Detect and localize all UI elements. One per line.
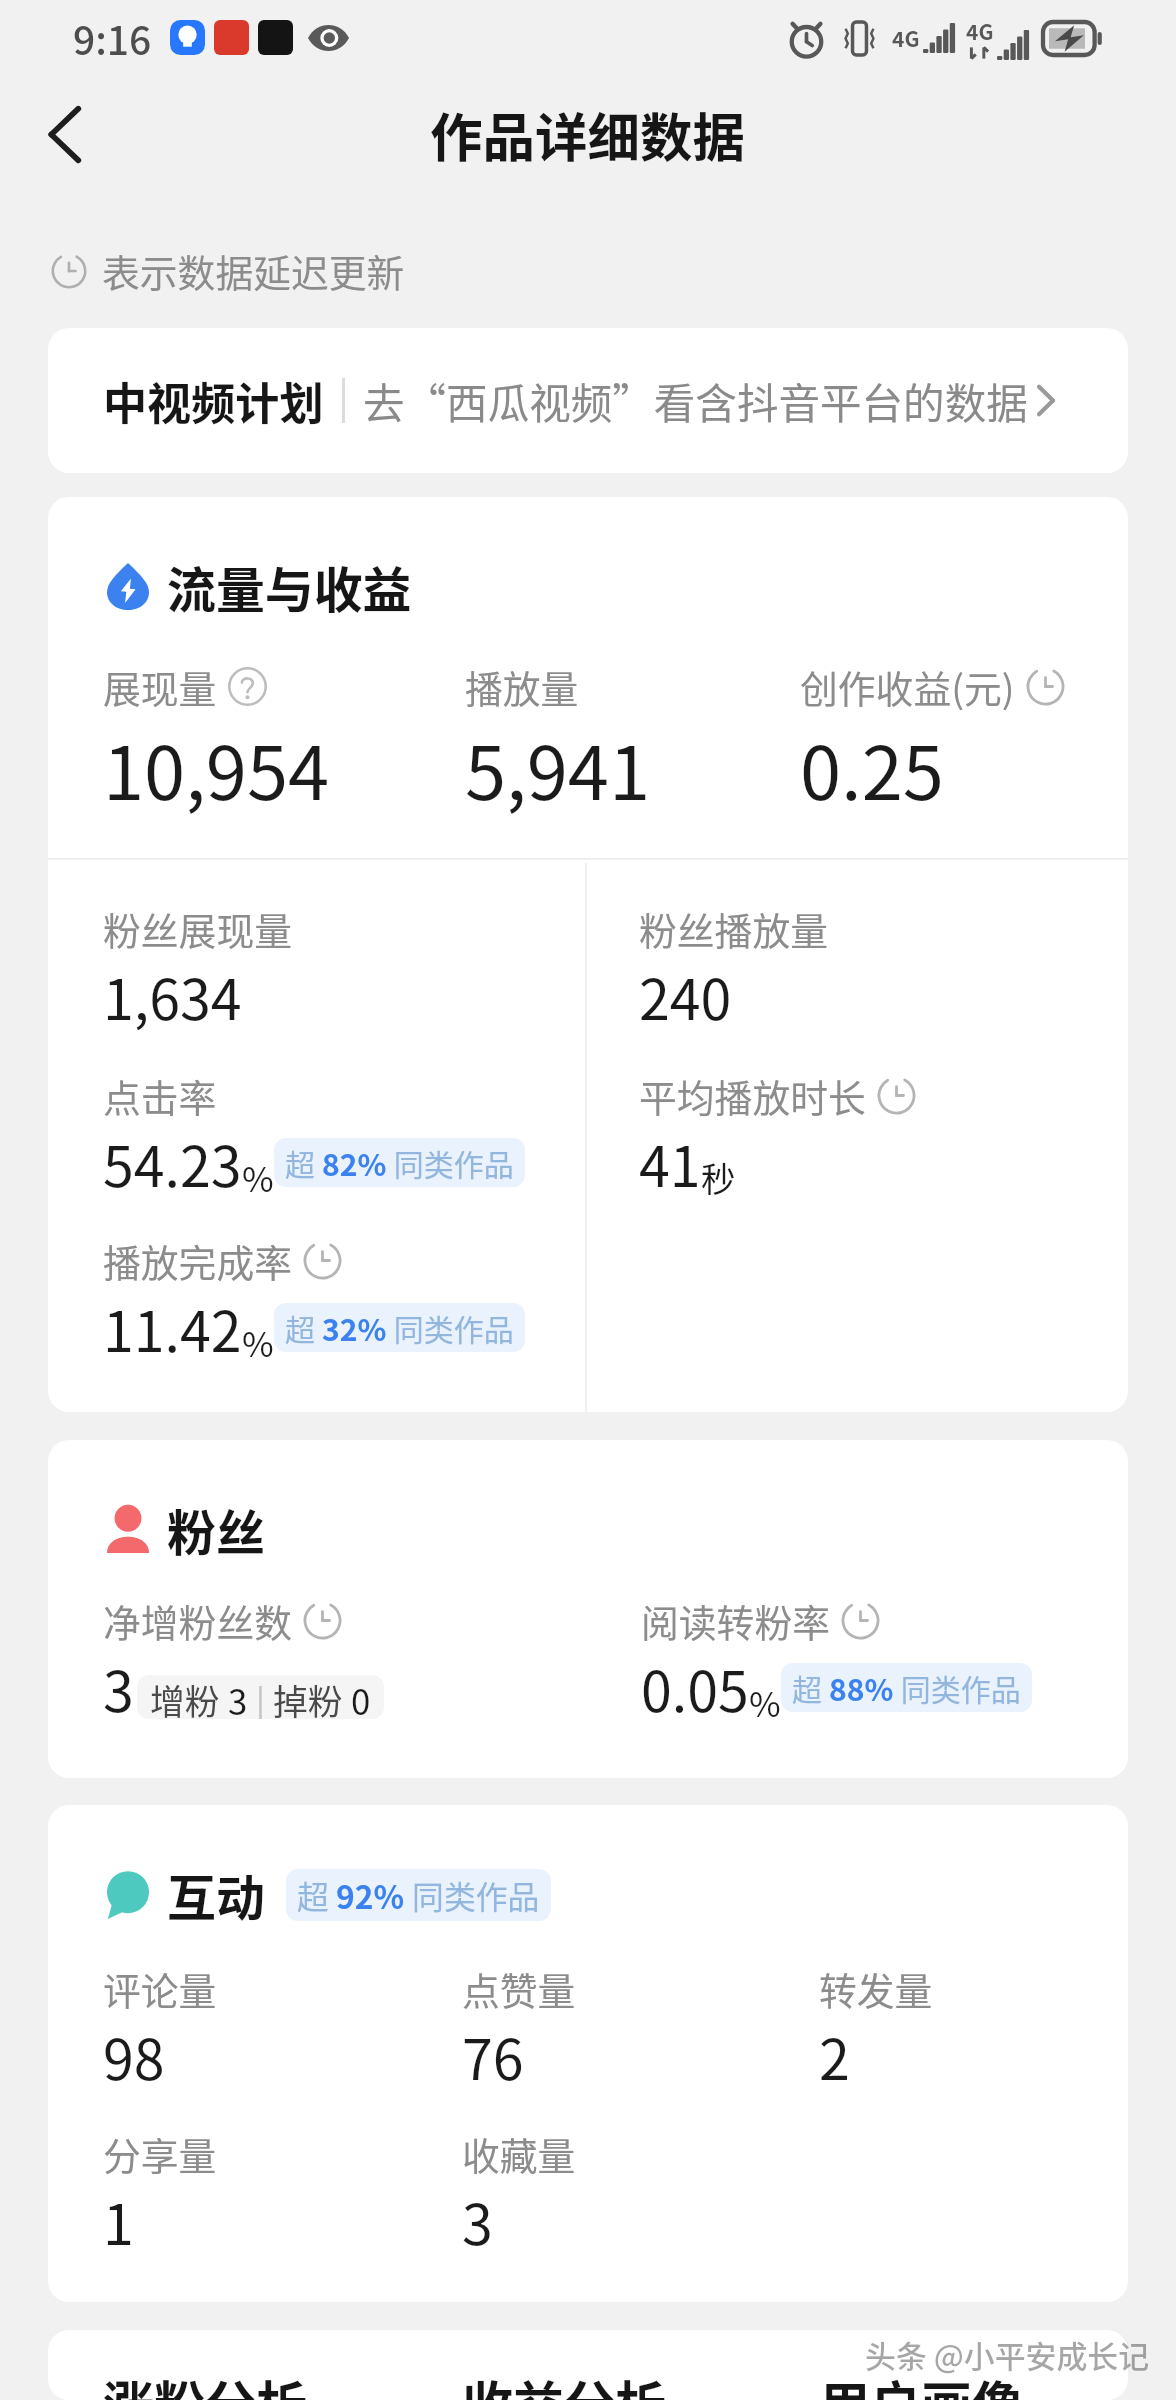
- staticText: |: [248, 1675, 273, 1719]
- staticText: 超: [297, 1872, 336, 1918]
- staticText: 涨粉分析: [103, 2365, 308, 2400]
- staticText: 分享量: [103, 2126, 217, 2181]
- staticText: 中视频计划: [103, 369, 324, 433]
- staticText: 播放量: [465, 659, 579, 714]
- button[interactable]: Back: [0, 71, 128, 197]
- staticText: 76: [462, 2016, 524, 2096]
- staticText: 同类作品: [387, 1141, 514, 1184]
- staticText: %: [242, 1317, 274, 1367]
- staticText: 互动: [167, 1859, 265, 1930]
- staticText: 41: [639, 1123, 701, 1203]
- staticText: 收藏量: [462, 2126, 576, 2181]
- staticText: 2: [819, 2016, 850, 2096]
- staticText: 平均播放时长: [639, 1068, 866, 1123]
- staticText: 超: [285, 1141, 322, 1184]
- staticText: 1: [103, 2181, 134, 2261]
- staticText: %: [242, 1152, 274, 1202]
- staticText: 4G: [892, 23, 920, 53]
- staticText: 3: [462, 2181, 493, 2261]
- staticText: 超: [285, 1306, 322, 1349]
- staticText: 流量与收益: [167, 551, 412, 622]
- staticText: %: [749, 1677, 781, 1727]
- button[interactable]: 中视频计划: [48, 328, 1128, 473]
- staticText: 11.42: [103, 1288, 242, 1368]
- staticText: 阅读转粉率: [641, 1593, 830, 1648]
- staticText: 240: [639, 956, 732, 1036]
- staticText: 粉丝展现量: [103, 901, 292, 956]
- staticText: 92%: [336, 1872, 405, 1918]
- staticText: 超: [792, 1666, 829, 1709]
- staticText: 88%: [829, 1666, 894, 1709]
- staticText: 增粉: [150, 1675, 228, 1719]
- staticText: 作品详细数据: [430, 96, 746, 172]
- staticText: 评论量: [103, 1961, 217, 2016]
- staticText: 秒: [701, 1152, 736, 1202]
- staticText: 转发量: [819, 1961, 933, 2016]
- staticText: 同类作品: [894, 1666, 1021, 1709]
- staticText: 98: [103, 2016, 165, 2096]
- staticText: 9:16: [73, 10, 152, 66]
- staticText: 82%: [322, 1141, 387, 1184]
- staticText: 同类作品: [387, 1306, 514, 1349]
- staticText: 4G: [966, 16, 994, 46]
- staticText: 0: [351, 1675, 371, 1719]
- staticText: 1,634: [103, 956, 242, 1036]
- staticText: 掉粉: [273, 1675, 351, 1719]
- staticText: 点赞量: [462, 1961, 576, 2016]
- staticText: 54.23: [103, 1123, 242, 1203]
- staticText: 去“西瓜视频”看含抖音平台的数据: [363, 371, 1028, 431]
- staticText: 表示数据延迟更新: [102, 243, 405, 298]
- staticText: 播放完成率: [103, 1233, 292, 1288]
- staticText: 同类作品: [405, 1872, 540, 1918]
- staticText: 5,941: [465, 714, 651, 821]
- staticText: 0.25: [800, 714, 944, 821]
- staticText: 3: [103, 1648, 134, 1728]
- staticText: 头条 @小平安成长记: [865, 2332, 1150, 2377]
- staticText: 展现量: [103, 659, 217, 714]
- staticText: 粉丝播放量: [639, 901, 828, 956]
- staticText: 32%: [322, 1306, 387, 1349]
- staticText: 10,954: [103, 714, 330, 821]
- staticText: 3: [228, 1675, 248, 1719]
- staticText: 粉丝: [167, 1494, 265, 1565]
- staticText: 用户画像: [819, 2365, 1024, 2400]
- staticText: 创作收益(元): [800, 659, 1015, 714]
- staticText: 收益分析: [462, 2365, 667, 2400]
- staticText: 净增粉丝数: [103, 1593, 292, 1648]
- staticText: 点击率: [103, 1068, 217, 1123]
- staticText: 0.05: [641, 1648, 749, 1728]
